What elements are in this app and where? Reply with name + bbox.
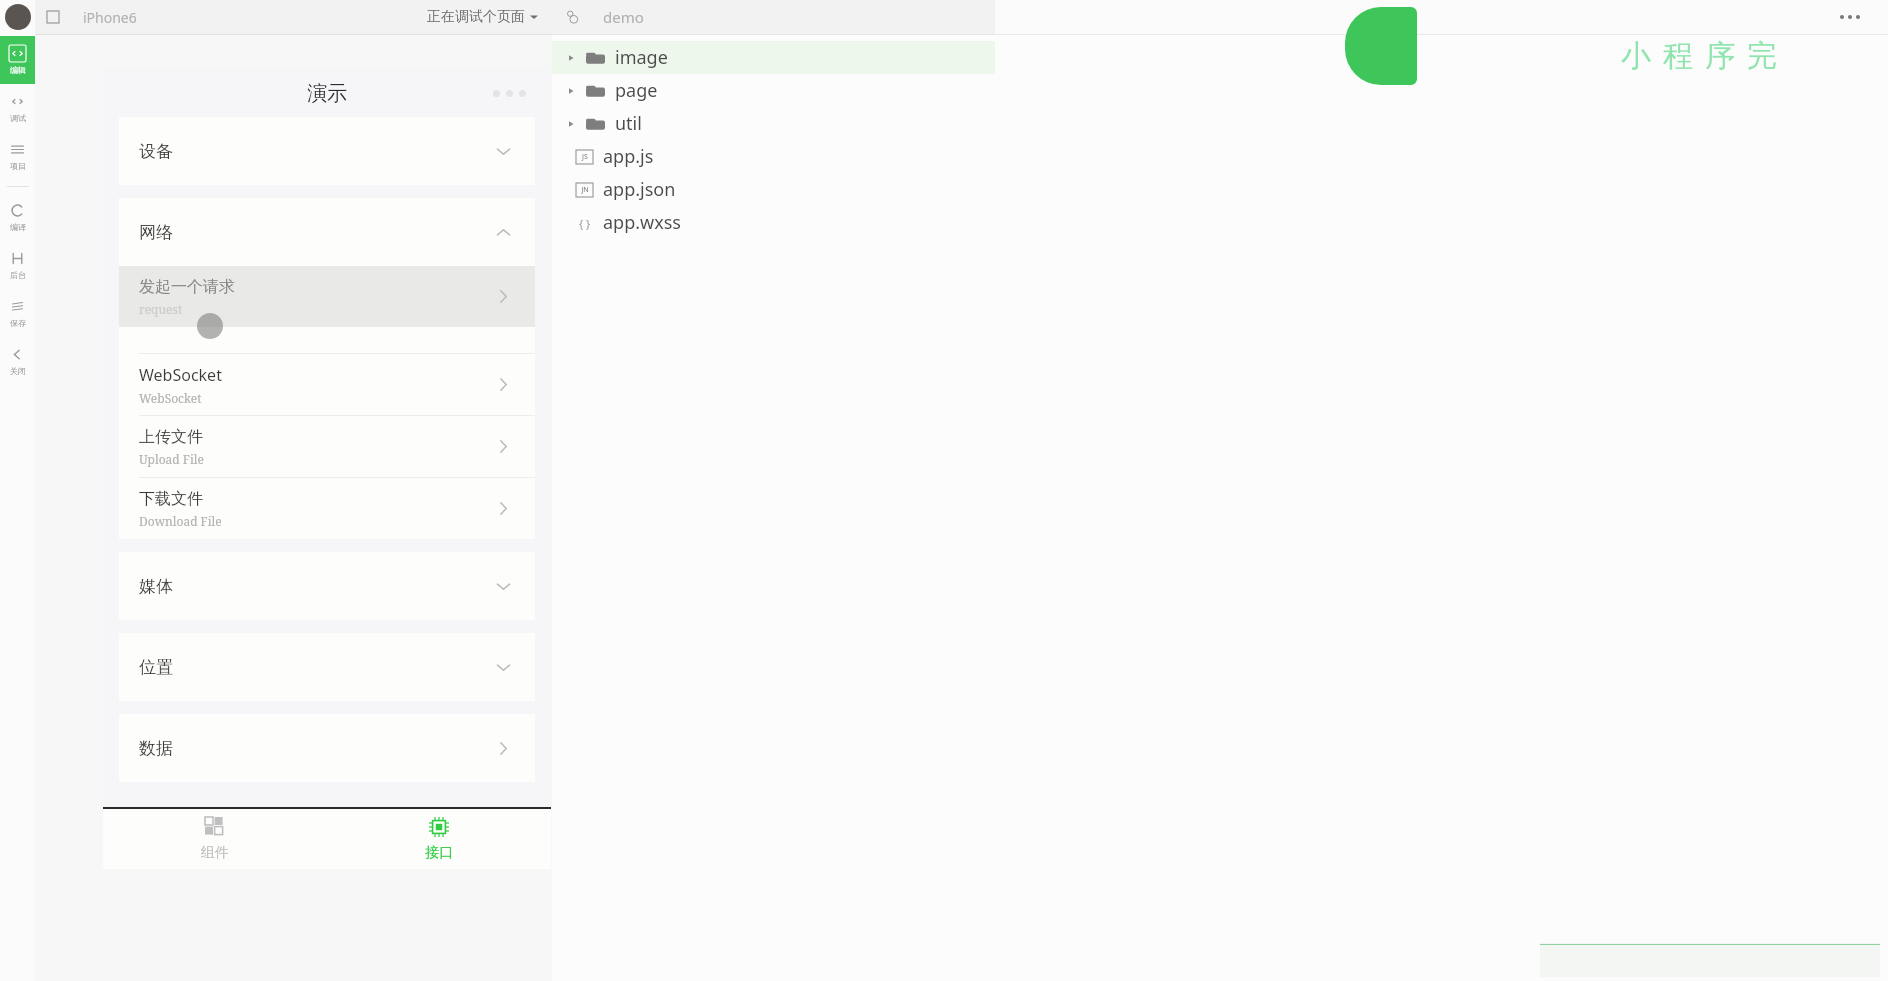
staticText: 设备 [139,141,173,162]
button[interactable]: Debugger [0,84,35,132]
staticText: request [139,301,183,317]
button[interactable]: 组件 [103,809,327,869]
staticText: 组件 [201,844,229,862]
staticText: 项目 [10,161,26,171]
button[interactable]: { } [552,206,995,239]
button[interactable]: More options [1832,9,1868,25]
staticText: JS [582,152,588,162]
staticText: 后台 [10,270,26,280]
button[interactable]: page [552,74,995,107]
button[interactable]: Save [0,289,35,337]
staticText: 上传文件 [139,427,203,447]
staticText: 位置 [139,657,173,678]
button[interactable]: Close [0,337,35,385]
staticText: WebSocket [139,390,202,406]
staticText: 保存 [10,318,26,328]
button[interactable]: JS [552,140,995,173]
button[interactable]: 媒体 [119,552,535,620]
staticText: JN [581,185,589,195]
staticText: Upload File [139,451,204,467]
button[interactable]: Toggle simulator [45,9,61,25]
button[interactable]: More [486,86,533,101]
button[interactable]: Project icon [566,10,581,25]
staticText: iPhone6 [83,8,137,27]
button[interactable]: 设备 [119,117,535,185]
staticText: app.json [603,177,676,202]
staticText: 正在调试个页面 [427,8,525,26]
staticText: 发起一个请求 [139,277,235,297]
staticText: 关闭 [10,366,26,376]
staticText: app.js [603,144,654,169]
staticText: 序 [1705,37,1735,75]
staticText: 编辑 [10,65,26,75]
button[interactable]: Editor [0,36,35,84]
staticText: page [615,78,658,103]
staticText: demo [603,7,644,27]
staticText: { } [579,216,591,230]
staticText: Download File [139,513,222,529]
button[interactable]: 接口 [327,809,551,869]
staticText: 数据 [139,738,173,759]
button[interactable]: 发起一个请求 [119,266,535,327]
button[interactable]: Account [5,4,31,30]
staticText: WebSocket [139,364,222,386]
staticText: 完 [1747,37,1777,75]
button[interactable]: 位置 [119,633,535,701]
button[interactable]: Background [0,241,35,289]
button[interactable]: 数据 [119,714,535,782]
button[interactable]: 下载文件 [119,478,535,539]
button[interactable]: 上传文件 [119,416,535,477]
button[interactable]: image [552,41,995,74]
button[interactable]: 正在调试个页面 [423,8,542,26]
staticText: 调试 [10,113,26,123]
staticText: 接口 [425,844,453,862]
staticText: 下载文件 [139,489,203,509]
button[interactable]: Compile [0,193,35,241]
staticText: 编译 [10,222,26,232]
button[interactable]: Project [0,132,35,180]
staticText: 演示 [307,81,347,106]
staticText: app.wxss [603,210,681,235]
button[interactable]: WebSocket [119,354,535,415]
staticText: 网络 [139,222,173,243]
button[interactable]: 网络 [119,198,535,266]
staticText: 媒体 [139,576,173,597]
button[interactable]: JN [552,173,995,206]
staticText: image [615,45,668,70]
staticText: util [615,111,642,136]
staticText: 程 [1663,37,1693,75]
button[interactable]: util [552,107,995,140]
staticText: 小 [1621,37,1651,75]
